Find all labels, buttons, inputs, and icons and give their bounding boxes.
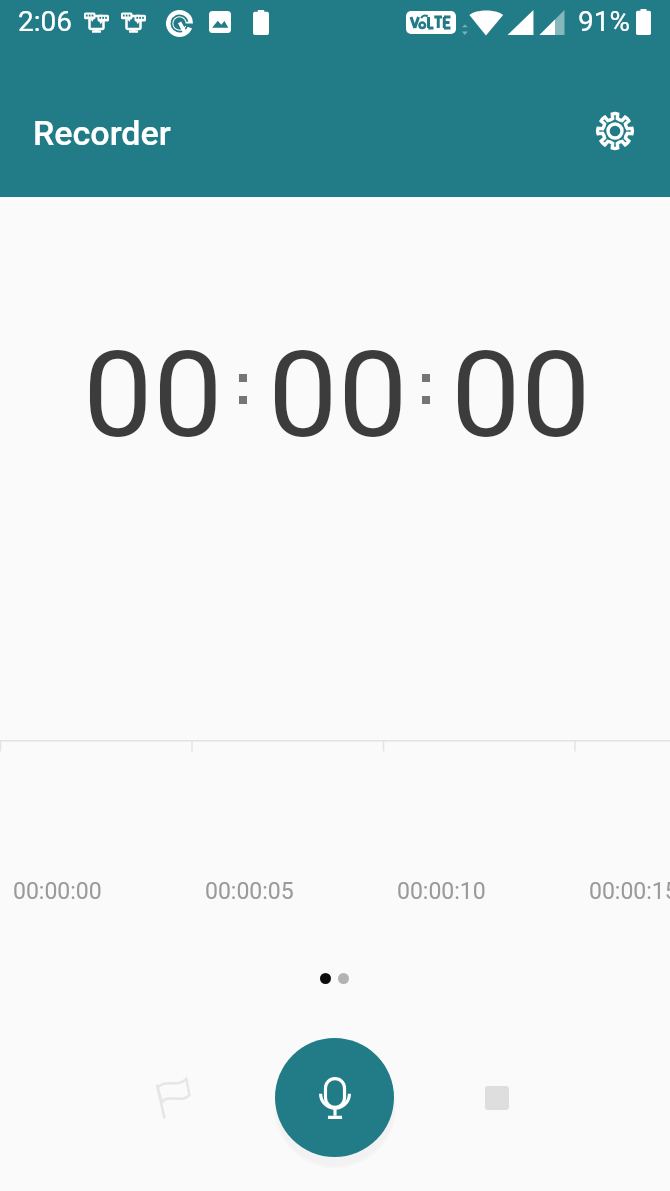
staticText: 91% bbox=[578, 5, 630, 38]
staticText: 00:00:10 bbox=[397, 878, 486, 905]
staticText: 00:00:15 bbox=[589, 878, 670, 905]
button[interactable]: Stop bbox=[465, 1066, 529, 1130]
staticText: 0 bbox=[153, 326, 223, 465]
staticText: 0 bbox=[268, 326, 338, 465]
staticText: 0 bbox=[521, 326, 591, 465]
button[interactable]: Record bbox=[275, 1038, 394, 1157]
button[interactable]: Add flag bbox=[141, 1065, 205, 1129]
staticText: 00:00:05 bbox=[205, 878, 294, 905]
staticText: Recorder bbox=[33, 113, 171, 153]
button[interactable]: Settings bbox=[588, 104, 642, 158]
staticText: 0 bbox=[83, 326, 153, 465]
staticText: 0 bbox=[451, 326, 521, 465]
staticText: 0 bbox=[338, 326, 408, 465]
staticText: 2:06 bbox=[18, 5, 72, 38]
staticText: 00:00:00 bbox=[13, 878, 102, 905]
